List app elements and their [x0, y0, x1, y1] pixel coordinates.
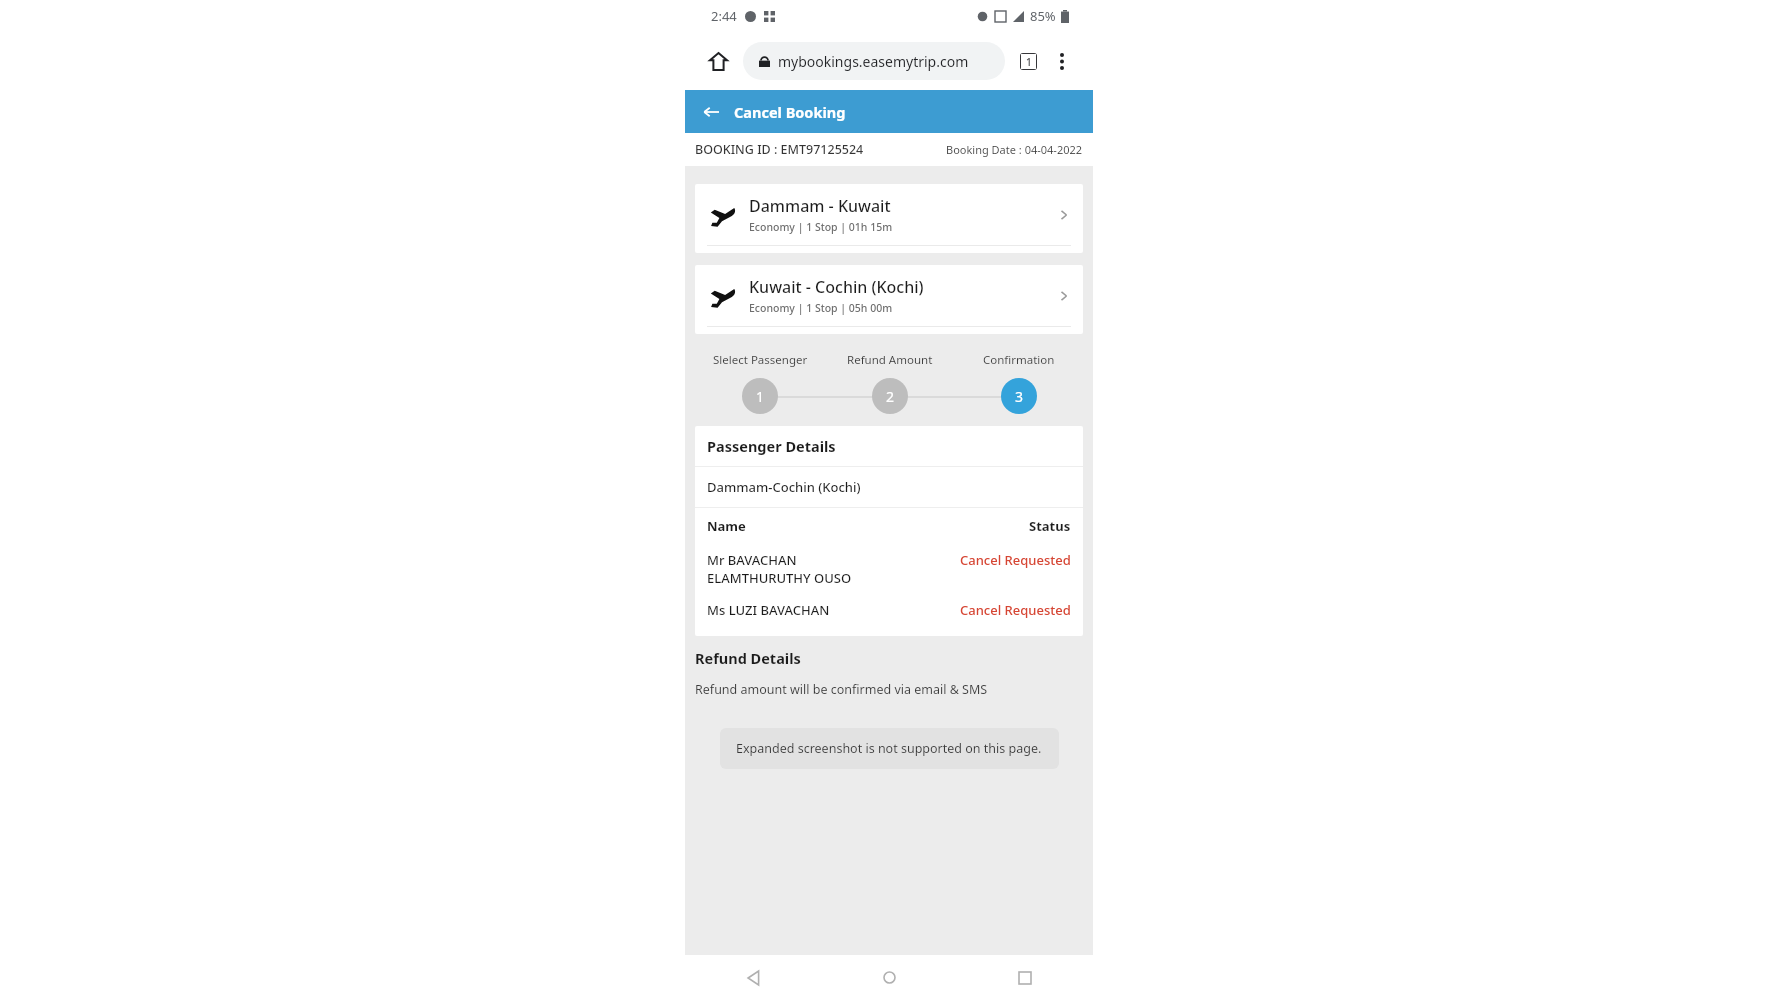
button[interactable]: Back	[685, 90, 1093, 133]
staticText: Dammam-Cochin (Kochi)	[707, 478, 861, 496]
staticText: Refund Details	[695, 648, 801, 668]
staticText: 2	[886, 387, 895, 406]
staticText: 85%	[1030, 7, 1056, 25]
staticText: Refund amount will be confirmed via emai…	[695, 681, 988, 698]
button[interactable]: Dammam - Kuwait	[695, 184, 1083, 253]
staticText: 3	[1015, 387, 1024, 406]
button[interactable]: Home	[821, 955, 957, 1000]
staticText: Cancel Booking	[734, 102, 846, 122]
staticText: Expanded screenshot is not supported on …	[736, 740, 1042, 757]
button[interactable]: Back	[685, 955, 821, 1000]
staticText: Confirmation	[983, 352, 1055, 368]
staticText: 1	[1026, 55, 1032, 69]
staticText: BOOKING ID : EMT97125524	[695, 141, 864, 158]
staticText: Dammam - Kuwait	[749, 195, 891, 217]
staticText: Economy | 1 Stop | 01h 15m	[749, 220, 893, 234]
button[interactable]: mybookings.easemytrip.com	[743, 42, 1005, 80]
staticText: Name	[707, 517, 746, 535]
button[interactable]: Ms LUZI BAVACHAN	[695, 594, 1083, 626]
button[interactable]: Tabs	[1011, 44, 1045, 78]
button[interactable]: Back	[697, 98, 725, 126]
staticText: mybookings.easemytrip.com	[778, 52, 969, 71]
staticText: Refund Amount	[847, 352, 933, 368]
button[interactable]: More options	[1045, 44, 1079, 78]
staticText: Ms LUZI BAVACHAN	[707, 601, 960, 619]
staticText: Economy | 1 Stop | 05h 00m	[749, 301, 893, 315]
staticText: Kuwait - Cochin (Kochi)	[749, 276, 924, 298]
staticText: Mr BAVACHAN ELAMTHURUTHY OUSO	[707, 551, 960, 587]
button[interactable]: 1	[742, 378, 778, 414]
staticText: Slelect Passenger	[713, 352, 808, 368]
staticText: 1	[756, 387, 765, 406]
button[interactable]: 3	[1001, 378, 1037, 414]
staticText: Cancel Requested	[960, 551, 1071, 569]
button[interactable]: 2	[872, 378, 908, 414]
button[interactable]: Mr BAVACHAN ELAMTHURUTHY OUSO	[695, 544, 1083, 594]
staticText: Cancel Requested	[960, 601, 1071, 619]
staticText: Booking Date : 04-04-2022	[946, 142, 1083, 157]
staticText: 2:44	[711, 7, 737, 25]
staticText: Status	[1029, 517, 1071, 535]
button[interactable]: Home	[699, 42, 737, 80]
button[interactable]: Kuwait - Cochin (Kochi)	[695, 265, 1083, 334]
staticText: Passenger Details	[707, 436, 836, 456]
button[interactable]: Recents	[957, 955, 1093, 1000]
